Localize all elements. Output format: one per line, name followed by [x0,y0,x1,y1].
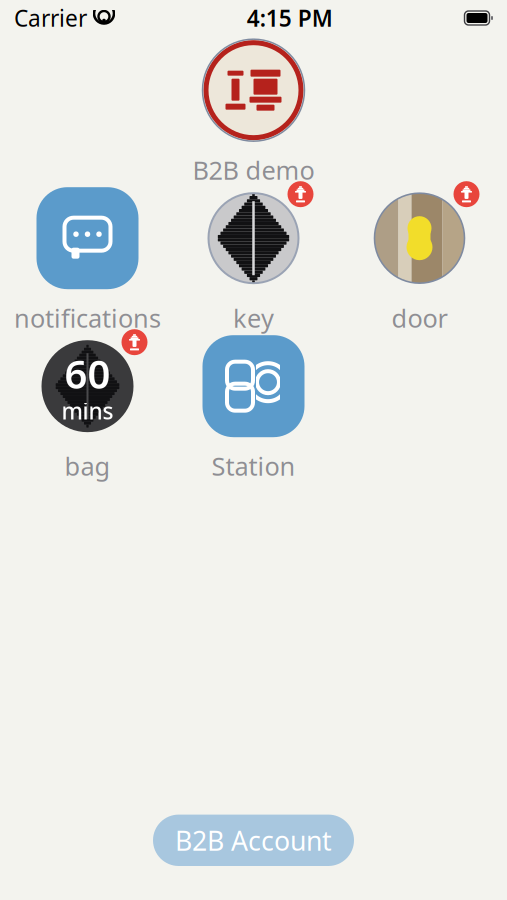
button[interactable]: Station [170,330,336,482]
button[interactable]: key [170,182,336,334]
staticText: 60 [64,347,110,400]
staticText: B2B demo [192,153,314,187]
staticText: bag [64,449,110,483]
staticText: door [391,301,447,335]
staticText: mins [61,396,113,426]
button[interactable]: notifications [4,182,170,334]
button[interactable]: 60 [4,330,170,482]
staticText: Carrier [14,3,87,33]
button[interactable]: B2B Account [153,815,354,866]
staticText: 4:15 PM [247,3,333,33]
button[interactable]: door [336,182,502,334]
staticText: notifications [14,301,161,335]
staticText: Station [211,449,295,483]
staticText: B2B Account [175,823,332,858]
button[interactable]: B2B demo [170,34,336,186]
staticText: key [233,301,274,335]
